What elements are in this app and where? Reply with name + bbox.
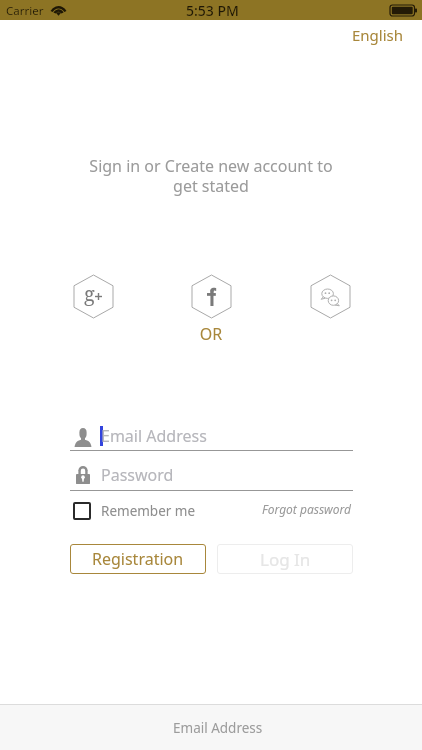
staticText: g [84,280,95,307]
button[interactable]: Sign in with Google Plus [74,275,113,318]
button[interactable]: Remember me [70,499,199,523]
staticText: Carrier [6,3,44,19]
button[interactable]: Sign in with WeChat [311,275,350,318]
button[interactable]: Sign in with Facebook [192,275,231,318]
staticText: 5:53 PM [186,1,239,20]
staticText: Sign in or Create new account to get sta… [0,155,422,196]
button[interactable]: English [348,21,408,49]
button[interactable]: Log In [217,544,353,574]
staticText: OR [0,323,422,345]
staticText: Forgot password [262,501,351,517]
staticText: Password [101,464,174,486]
button[interactable]: Forgot password [258,497,355,521]
staticText: Remember me [101,502,196,520]
staticText: Email Address [173,719,263,737]
button[interactable]: Registration [70,544,206,574]
staticText: Log In [260,548,311,571]
button[interactable]: Email Address [70,424,353,451]
staticText: Registration [92,548,184,570]
staticText: English [352,25,404,45]
staticText: Email Address [101,425,207,447]
button[interactable]: Password [70,464,353,491]
